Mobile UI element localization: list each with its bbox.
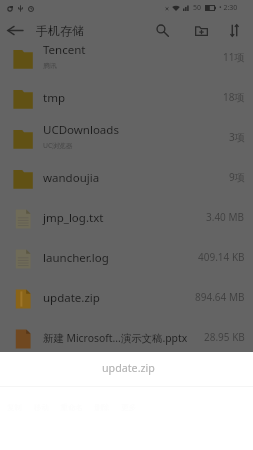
staticText: update.zip (43, 290, 100, 306)
staticText: 9项 (229, 170, 245, 184)
staticText: wandoujia (43, 170, 100, 186)
staticText: update.zip (102, 361, 155, 376)
staticText: 50 (193, 3, 202, 13)
button[interactable]: Back (0, 19, 30, 42)
staticText: Tencent (43, 42, 86, 58)
staticText: 28.95 KB (204, 330, 245, 344)
button[interactable]: Sort (221, 19, 247, 42)
staticText: jmp_log.txt (43, 210, 104, 226)
staticText: UC浏览器 (43, 141, 73, 150)
staticText: 3项 (229, 130, 245, 144)
staticText: 手机存储 (36, 23, 84, 38)
staticText: UCDownloads (43, 122, 119, 138)
staticText: 18项 (223, 90, 245, 104)
button[interactable]: 新建 Microsoft...演示文稿.pptx (0, 319, 253, 359)
button[interactable]: New folder (188, 19, 214, 42)
staticText: 409.14 KB (198, 250, 245, 264)
staticText: 11项 (223, 50, 245, 64)
staticText: 894.64 MB (195, 290, 245, 304)
staticText: tmp (43, 90, 65, 106)
staticText: • 2:30 (219, 3, 238, 13)
button[interactable]: wandoujia (0, 159, 253, 199)
button[interactable]: Tencent (0, 39, 253, 79)
staticText: 新建 Microsoft...演示文稿.pptx (43, 331, 188, 345)
button[interactable]: Search (149, 19, 175, 42)
button[interactable]: update.zip (0, 279, 253, 319)
staticText: 3.40 MB (206, 210, 245, 224)
staticText: 腾讯 (43, 61, 57, 70)
staticText: launcher.log (43, 250, 109, 266)
button[interactable]: tmp (0, 79, 253, 119)
button[interactable]: jmp_log.txt (0, 199, 253, 239)
button[interactable]: launcher.log (0, 239, 253, 279)
button[interactable]: UCDownloads (0, 119, 253, 159)
